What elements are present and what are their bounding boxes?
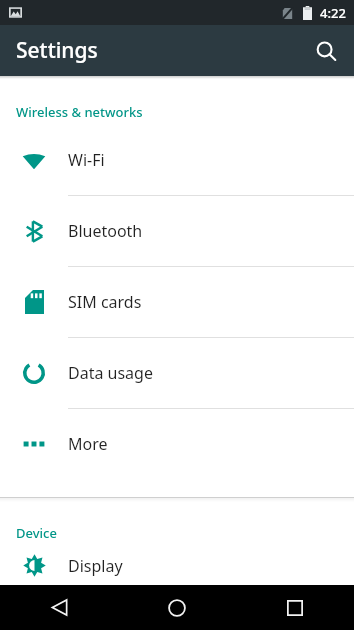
button[interactable]: SIM cards [0,267,354,337]
button[interactable]: Home [150,585,204,630]
staticText: Device [16,524,57,542]
staticText: More [68,433,108,455]
button[interactable]: Data usage [0,338,354,408]
button[interactable]: Bluetooth [0,196,354,266]
button[interactable]: Back [32,585,86,630]
staticText: 4:22 [320,4,346,22]
button[interactable]: Wi-Fi [0,125,354,195]
button[interactable]: Display [0,546,354,585]
button[interactable]: Recent apps [268,585,322,630]
button[interactable]: More [0,409,354,479]
staticText: Wi-Fi [68,149,105,171]
staticText: Bluetooth [68,220,143,242]
staticText: SIM cards [68,291,142,313]
staticText: Display [68,555,123,577]
staticText: Settings [16,36,98,65]
button[interactable]: Search [304,29,348,73]
staticText: Wireless & networks [16,103,143,121]
staticText: Data usage [68,362,153,384]
